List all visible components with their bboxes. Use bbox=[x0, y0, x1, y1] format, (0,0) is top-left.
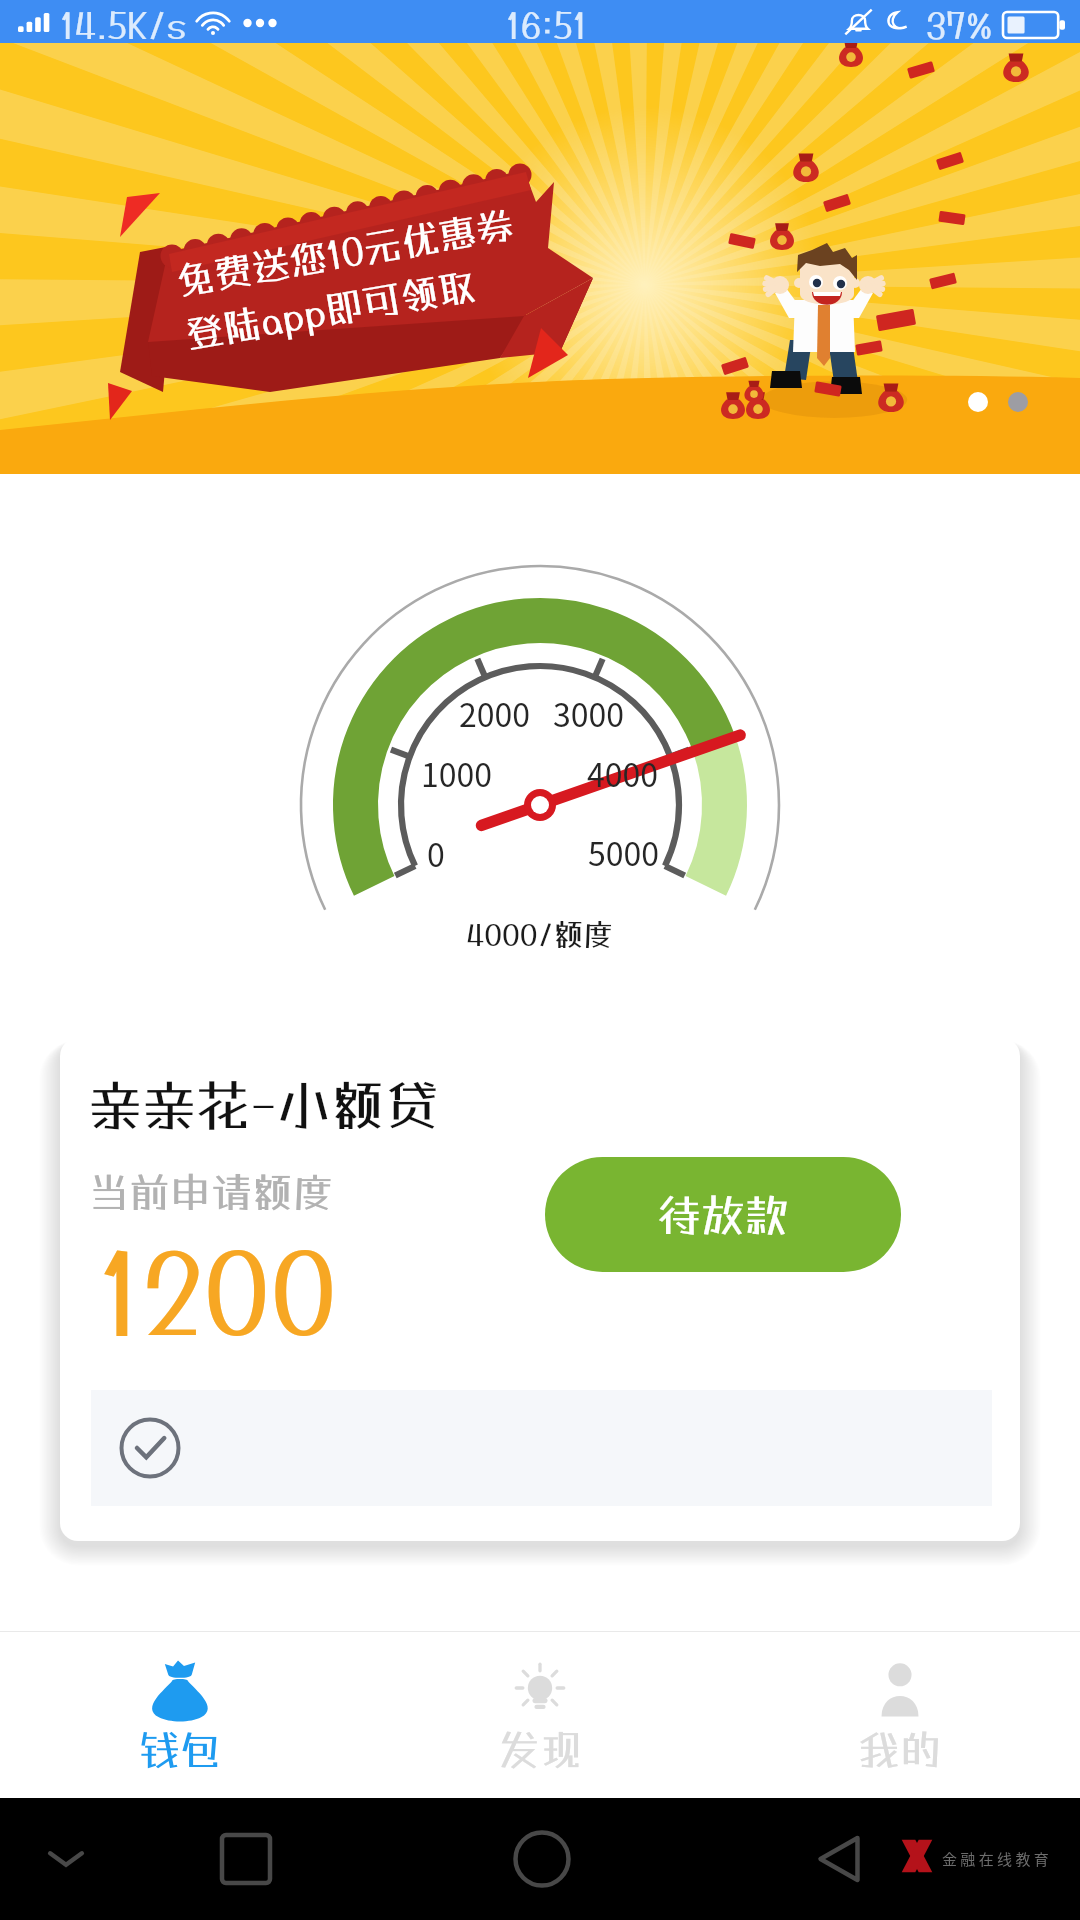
button[interactable]: 亲亲花-小额贷 bbox=[60, 1038, 1020, 1541]
staticText: 当前申请额度 bbox=[88, 1168, 334, 1216]
staticText: 3000 bbox=[553, 690, 625, 736]
button[interactable]: 待放款 bbox=[545, 1157, 901, 1272]
button[interactable]: Hide keyboard bbox=[36, 1829, 96, 1889]
staticText: 14.5K/s bbox=[60, 4, 187, 46]
staticText: 亲亲花-小额贷 bbox=[88, 1073, 439, 1137]
button[interactable]: Home bbox=[507, 1824, 577, 1894]
staticText: 1200 bbox=[98, 1226, 337, 1358]
button[interactable]: 免费送您10元优惠券 登陆app即可领取 bbox=[0, 43, 1080, 474]
button[interactable]: Back bbox=[806, 1826, 872, 1892]
staticText: 待放款 bbox=[657, 1189, 789, 1241]
staticText: 钱包 bbox=[138, 1725, 223, 1775]
staticText: 金 融 在 线 教 育 bbox=[942, 1848, 1049, 1870]
staticText: 0 bbox=[427, 830, 445, 876]
button[interactable]: 钱包 bbox=[0, 1632, 360, 1798]
staticText: 37% bbox=[926, 4, 993, 46]
button[interactable]: 我的 bbox=[720, 1632, 1080, 1798]
staticText: 免费送您10元优惠券 登陆app即可领取 bbox=[173, 201, 527, 356]
staticText: 4000/额度 bbox=[466, 917, 614, 952]
staticText: 发现 bbox=[498, 1725, 583, 1775]
staticText: 1000 bbox=[421, 750, 493, 796]
staticText: 4000 bbox=[587, 750, 659, 796]
button[interactable]: 发现 bbox=[360, 1632, 720, 1798]
staticText: 5000 bbox=[588, 829, 660, 875]
staticText: 2000 bbox=[459, 690, 531, 736]
staticText: 16:51 bbox=[506, 4, 588, 46]
button[interactable]: Recents bbox=[213, 1826, 279, 1892]
staticText: 我的 bbox=[858, 1725, 943, 1775]
